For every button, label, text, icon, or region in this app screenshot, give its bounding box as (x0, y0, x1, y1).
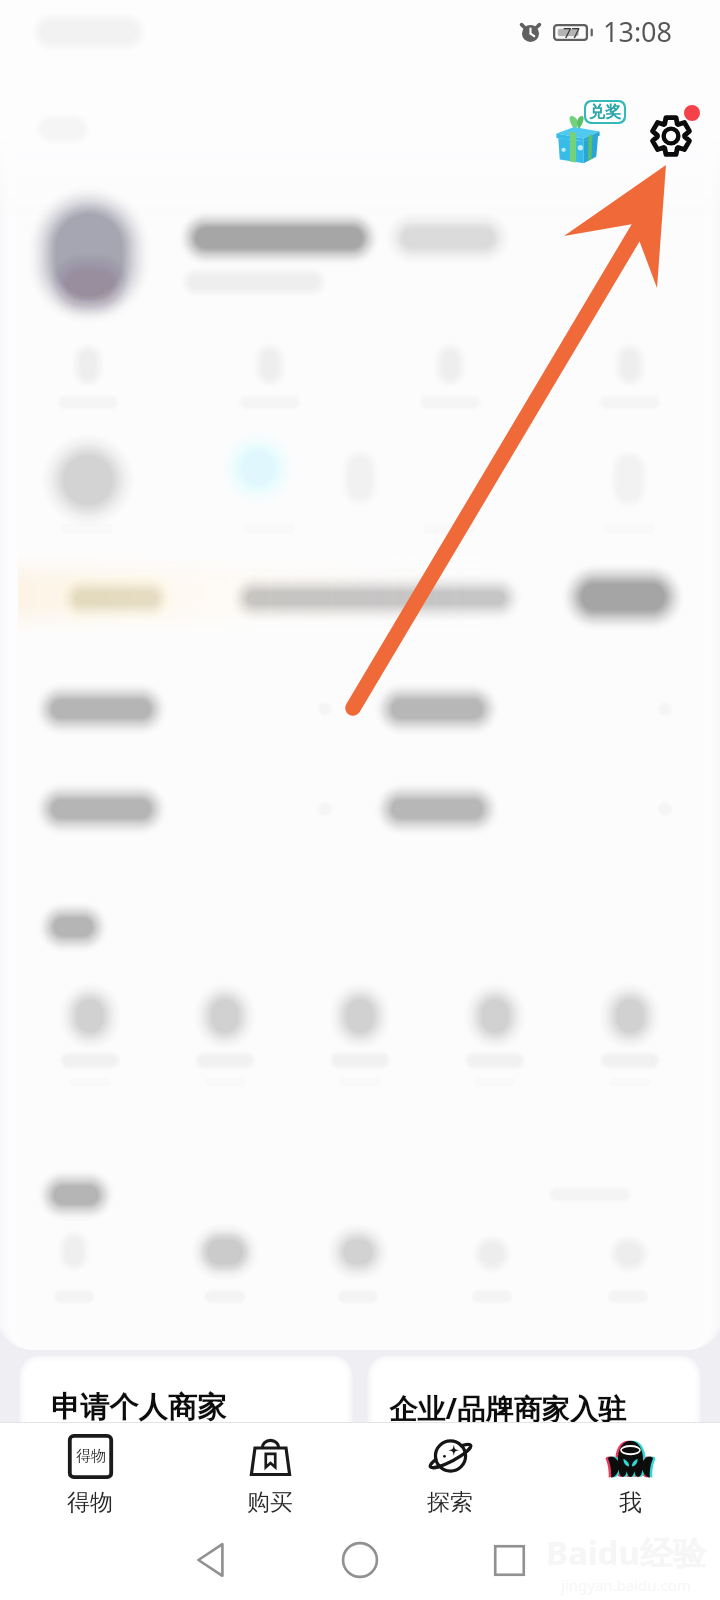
staticText: 我 (619, 1488, 642, 1517)
staticText: 企业/品牌商家入驻 (389, 1389, 627, 1424)
button[interactable]: Home (329, 1529, 391, 1591)
button[interactable]: Settings (640, 100, 712, 172)
staticText: 得物 (67, 1488, 113, 1517)
staticText: 申请个人商家 (51, 1389, 227, 1424)
staticText: 得物 (76, 1447, 106, 1466)
button[interactable]: 申请个人商家 (26, 1362, 346, 1424)
staticText: Baidu经验 (546, 1530, 706, 1575)
staticText: 13:08 (603, 13, 673, 50)
button[interactable]: Recents (478, 1529, 540, 1591)
button[interactable]: 探索 (360, 1422, 540, 1520)
button[interactable]: 得物 (0, 1422, 180, 1520)
button[interactable]: Back (180, 1529, 242, 1591)
button[interactable]: 我 (540, 1422, 720, 1520)
button[interactable]: 企业/品牌商家入驻 (374, 1362, 694, 1424)
button[interactable]: 兑奖 Redeem gift (546, 92, 638, 176)
staticText: 购买 (247, 1488, 293, 1517)
staticText: 77 (563, 22, 581, 42)
staticText: 兑奖 (589, 102, 621, 122)
button[interactable]: 购买 (180, 1422, 360, 1520)
staticText: 探索 (427, 1488, 473, 1517)
